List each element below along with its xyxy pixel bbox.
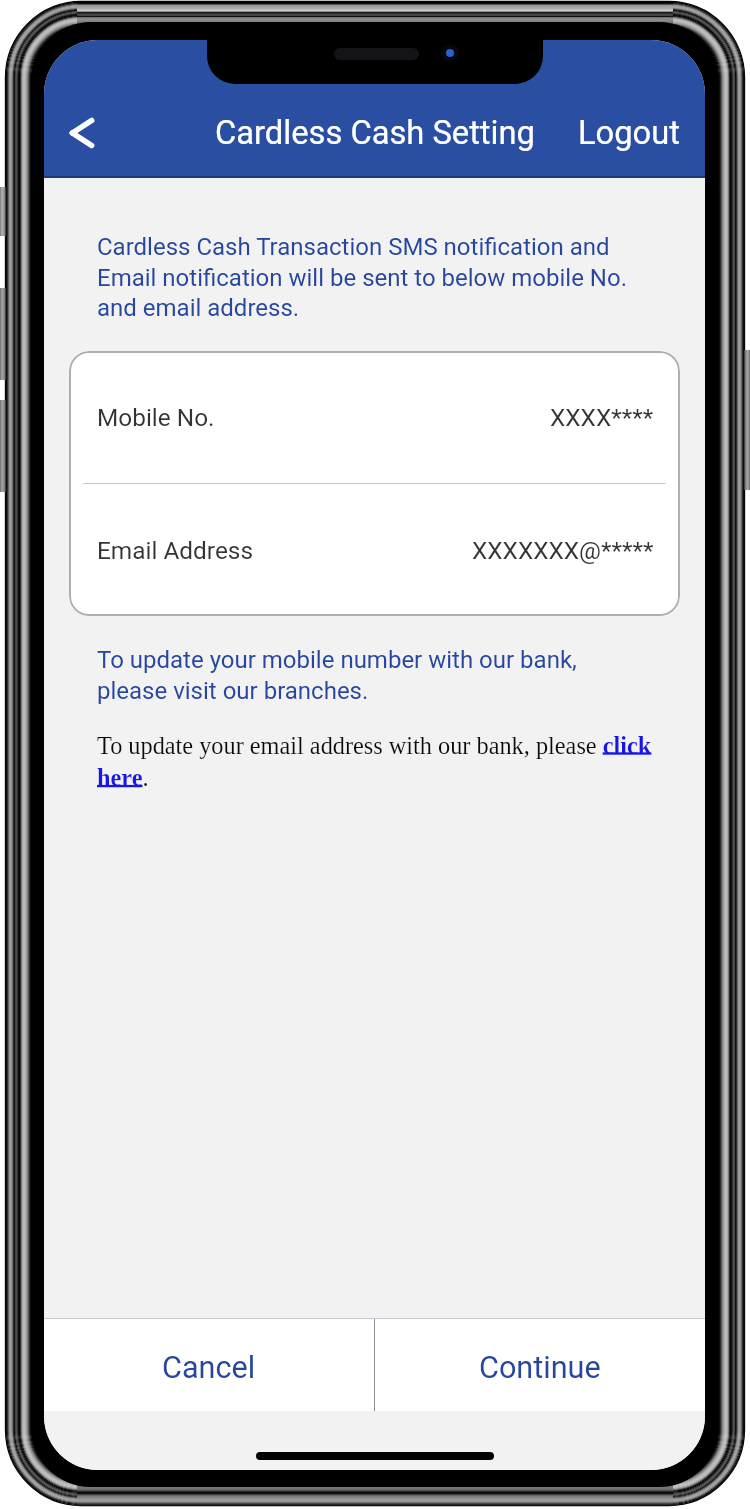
- button[interactable]: Mobile No.: [69, 351, 680, 483]
- staticText: Email Address: [97, 536, 254, 565]
- staticText: Cancel: [162, 1350, 256, 1386]
- staticText: Continue: [479, 1350, 601, 1386]
- button[interactable]: Cancel: [44, 1319, 374, 1411]
- button[interactable]: Back: [51, 102, 113, 164]
- staticText: Mobile No.: [97, 403, 215, 432]
- staticText: XXXXXXX@*****: [472, 536, 654, 565]
- staticText: Logout: [578, 114, 680, 152]
- button[interactable]: Continue: [375, 1319, 705, 1411]
- staticText: To update your email address with our ba…: [97, 732, 697, 791]
- staticText: Cardless Cash Setting: [215, 114, 535, 152]
- staticText: XXXX****: [550, 403, 654, 432]
- button[interactable]: Logout: [560, 104, 705, 162]
- button[interactable]: Email Address: [69, 484, 680, 616]
- staticText: To update your mobile number with our ba…: [97, 646, 647, 705]
- staticText: Cardless Cash Transaction SMS notificati…: [97, 233, 667, 322]
